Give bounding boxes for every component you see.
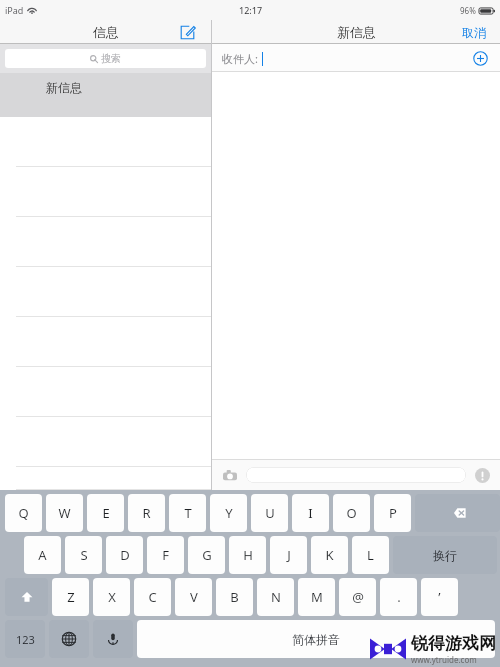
staticText: 取消 — [462, 25, 486, 40]
staticText: A — [38, 546, 47, 564]
staticText: C — [148, 588, 157, 606]
button[interactable]: B — [216, 578, 253, 616]
staticText: 123 — [16, 632, 35, 647]
button[interactable]: 搜索 — [5, 49, 206, 68]
button[interactable]: Add contact — [470, 48, 490, 68]
staticText: E — [102, 504, 110, 522]
staticText: L — [367, 546, 374, 564]
staticText: N — [271, 588, 281, 606]
button[interactable]: P — [374, 494, 411, 532]
button[interactable]: T — [169, 494, 206, 532]
staticText: B — [230, 588, 239, 606]
button[interactable]: 新信息 — [0, 73, 211, 117]
staticText: Y — [225, 504, 233, 522]
staticText: 锐得游戏网 — [411, 633, 496, 654]
staticText: . — [397, 588, 401, 606]
button[interactable]: Z — [52, 578, 89, 616]
staticText: 96% — [460, 5, 476, 16]
staticText: R — [142, 504, 151, 522]
staticText: ’ — [438, 588, 441, 606]
button[interactable]: K — [311, 536, 348, 574]
staticText: G — [202, 546, 212, 564]
button[interactable]: G — [188, 536, 225, 574]
staticText: 搜索 — [101, 52, 121, 65]
button[interactable]: R — [128, 494, 165, 532]
button[interactable] — [0, 317, 211, 367]
button[interactable]: Shift — [5, 578, 48, 616]
button[interactable] — [0, 217, 211, 267]
button[interactable]: 123 — [5, 620, 45, 658]
button[interactable]: @ — [339, 578, 376, 616]
staticText: Z — [67, 588, 75, 606]
button[interactable]: H — [229, 536, 266, 574]
staticText: W — [58, 504, 71, 522]
button[interactable]: Change language — [49, 620, 89, 658]
button[interactable]: Y — [210, 494, 247, 532]
button[interactable]: M — [298, 578, 335, 616]
button[interactable]: Backspace — [415, 494, 500, 532]
staticText: 信息 — [93, 24, 119, 40]
button[interactable]: J — [270, 536, 307, 574]
button[interactable]: 简体拼音 — [137, 620, 495, 658]
staticText: O — [346, 504, 357, 522]
staticText: T — [184, 504, 192, 522]
staticText: D — [120, 546, 130, 564]
button[interactable]: W — [46, 494, 83, 532]
button[interactable]: V — [175, 578, 212, 616]
staticText: X — [108, 588, 116, 606]
staticText: 简体拼音 — [292, 632, 340, 647]
staticText: F — [162, 546, 169, 564]
staticText: 12:17 — [239, 4, 263, 16]
staticText: www.ytruide.com — [411, 654, 477, 665]
button[interactable] — [0, 267, 211, 317]
button[interactable]: C — [134, 578, 171, 616]
button[interactable]: F — [147, 536, 184, 574]
button[interactable] — [0, 117, 211, 167]
button[interactable]: L — [352, 536, 389, 574]
button[interactable] — [0, 367, 211, 417]
button[interactable]: Camera — [220, 465, 240, 485]
staticText: J — [287, 546, 291, 564]
button[interactable]: U — [251, 494, 288, 532]
staticText: 收件人: — [222, 51, 258, 66]
staticText: I — [308, 504, 313, 522]
staticText: 新信息 — [46, 80, 82, 95]
staticText: U — [265, 504, 275, 522]
button[interactable]: 换行 — [393, 536, 497, 574]
button[interactable] — [0, 167, 211, 217]
button[interactable]: . — [380, 578, 417, 616]
staticText: iPad — [5, 4, 24, 16]
button[interactable]: X — [93, 578, 130, 616]
button[interactable]: N — [257, 578, 294, 616]
staticText: V — [190, 588, 198, 606]
staticText: Q — [18, 504, 29, 522]
staticText: 新信息 — [337, 24, 376, 40]
staticText: S — [80, 546, 88, 564]
staticText: @ — [352, 588, 364, 606]
staticText: K — [325, 546, 334, 564]
staticText: P — [389, 504, 397, 522]
button[interactable]: Dictation — [93, 620, 133, 658]
button[interactable]: O — [333, 494, 370, 532]
button[interactable] — [246, 467, 466, 483]
button[interactable]: D — [106, 536, 143, 574]
button[interactable]: 取消 — [458, 23, 490, 42]
staticText: 换行 — [433, 548, 457, 563]
button[interactable]: A — [24, 536, 61, 574]
button[interactable]: ’ — [421, 578, 458, 616]
button[interactable]: New message — [177, 22, 197, 42]
button[interactable]: Q — [5, 494, 42, 532]
button[interactable]: S — [65, 536, 102, 574]
button[interactable] — [0, 467, 211, 490]
staticText: M — [311, 588, 323, 606]
button[interactable]: I — [292, 494, 329, 532]
button[interactable] — [0, 417, 211, 467]
button[interactable]: E — [87, 494, 124, 532]
button[interactable]: Send audio — [472, 465, 492, 485]
staticText: H — [243, 546, 253, 564]
